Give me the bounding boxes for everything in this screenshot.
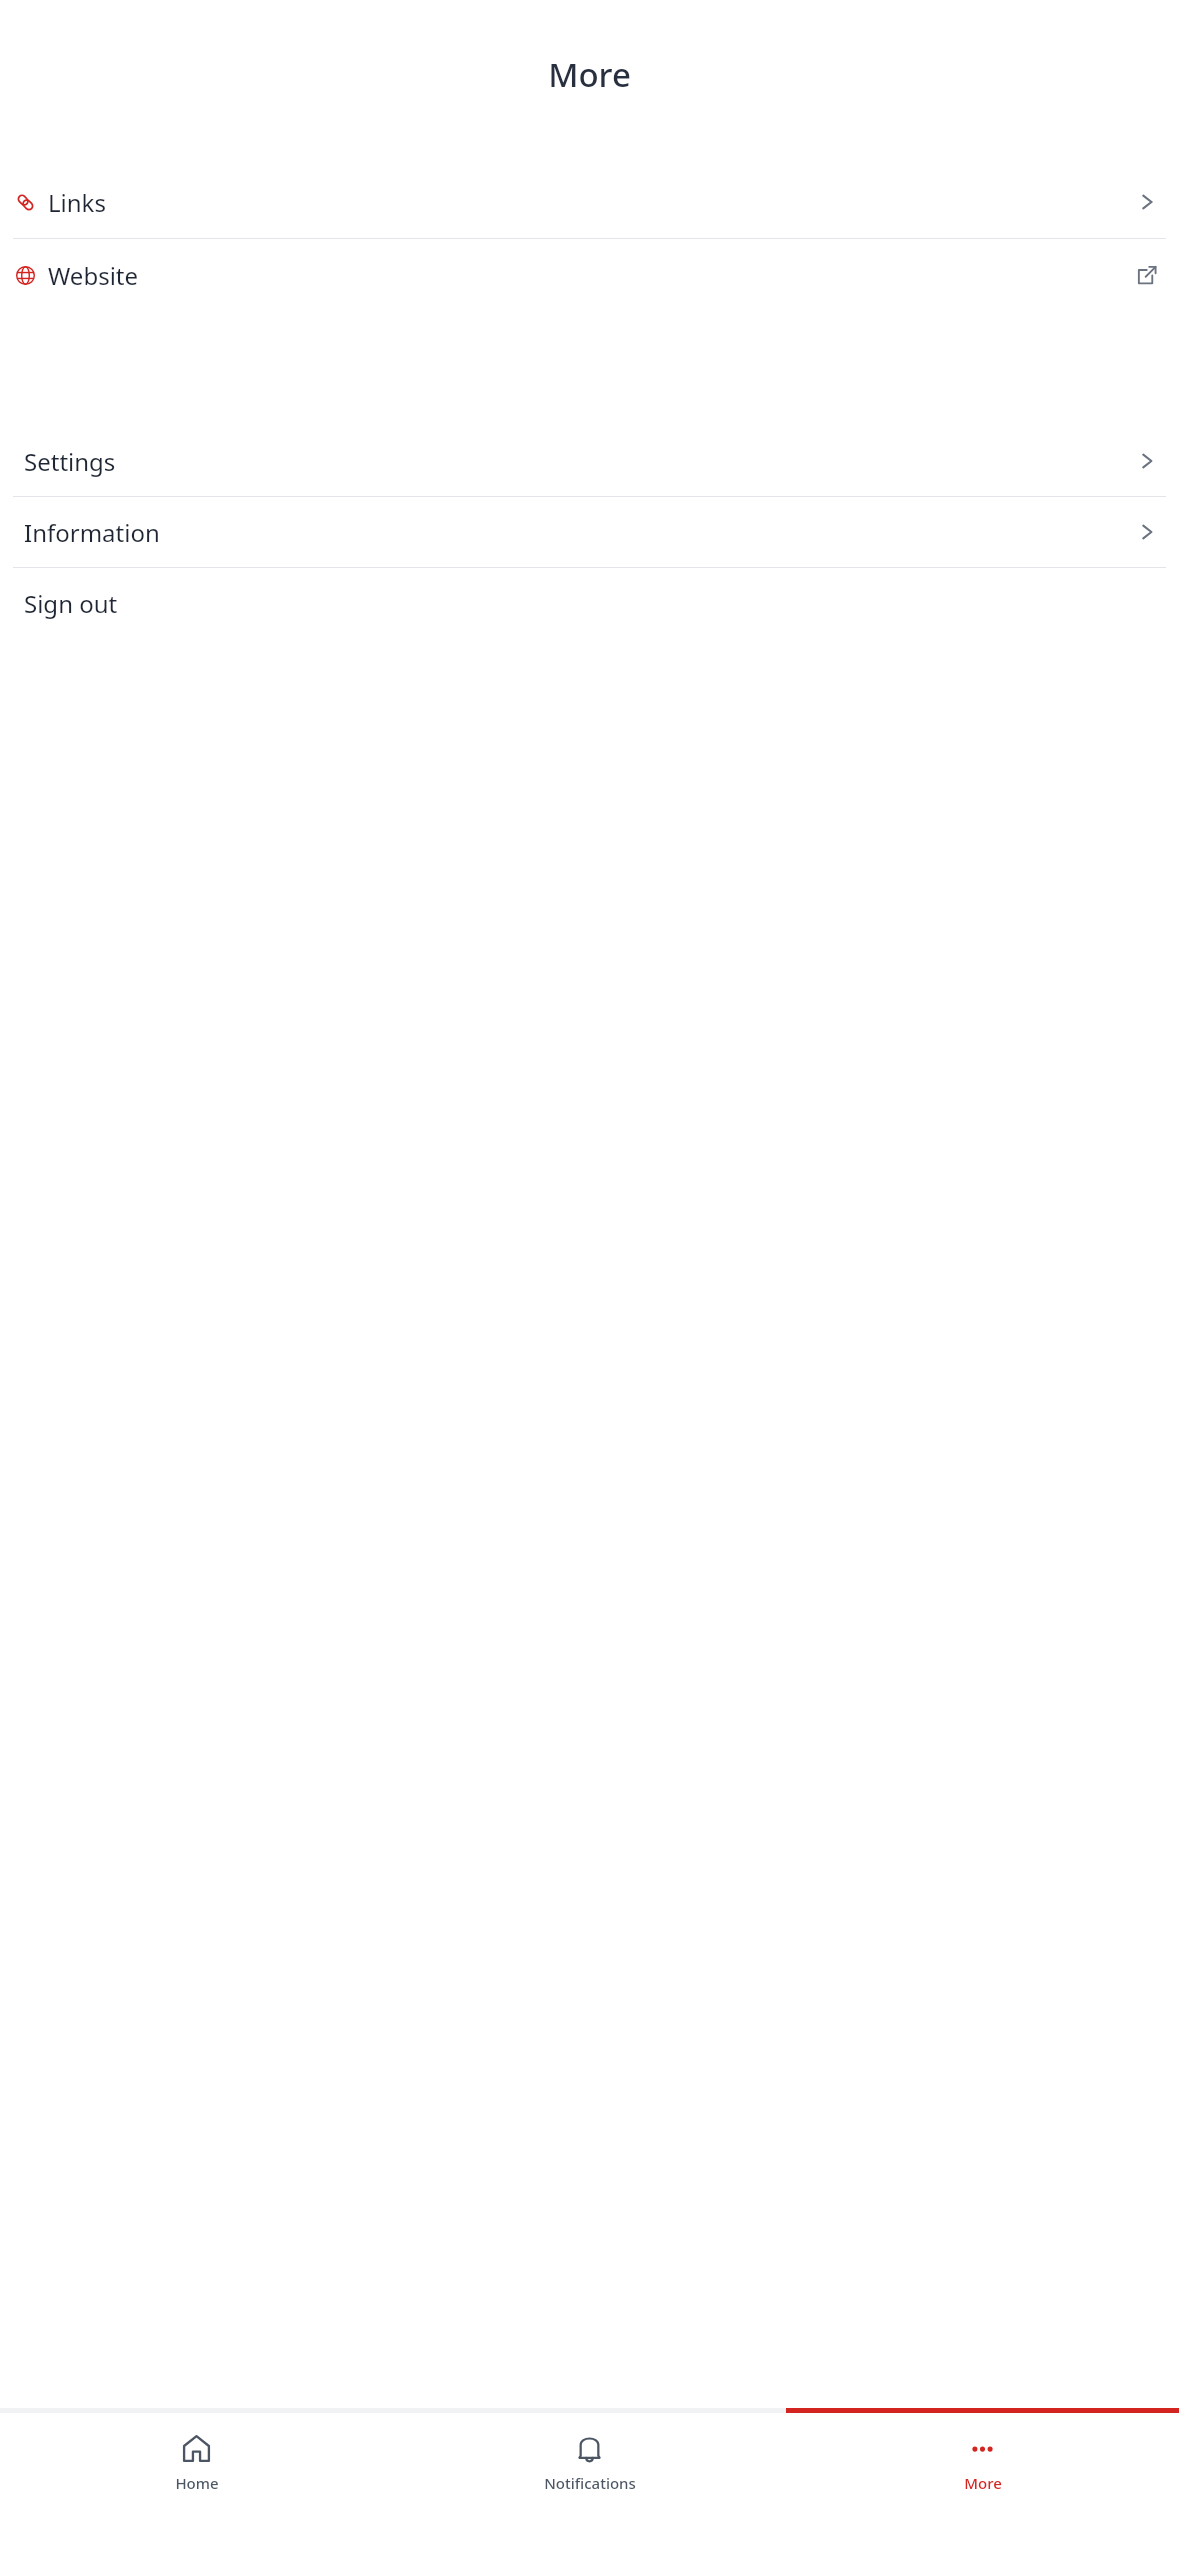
other: Open website in browser bbox=[1136, 264, 1158, 286]
staticText: Notifications bbox=[544, 2473, 636, 2493]
other: Open settings bbox=[1136, 450, 1158, 472]
button[interactable]: More bbox=[786, 2413, 1179, 2553]
button[interactable]: Settings bbox=[0, 426, 1179, 496]
staticText: Home bbox=[175, 2473, 219, 2493]
staticText: Website bbox=[48, 259, 139, 292]
button[interactable]: Links bbox=[0, 166, 1179, 238]
button[interactable]: Notifications bbox=[393, 2413, 786, 2553]
staticText: Settings bbox=[24, 445, 116, 478]
other: Open links bbox=[1136, 191, 1158, 213]
other: Open information bbox=[1136, 521, 1158, 543]
staticText: Sign out bbox=[24, 587, 118, 620]
button[interactable]: Home bbox=[0, 2413, 393, 2553]
staticText: More bbox=[548, 52, 631, 97]
button[interactable]: Information bbox=[0, 497, 1179, 567]
staticText: More bbox=[964, 2473, 1002, 2493]
staticText: Links bbox=[48, 186, 106, 219]
button[interactable]: Sign out bbox=[0, 568, 1179, 638]
button[interactable]: Website bbox=[0, 239, 1179, 311]
staticText: Information bbox=[24, 516, 160, 549]
